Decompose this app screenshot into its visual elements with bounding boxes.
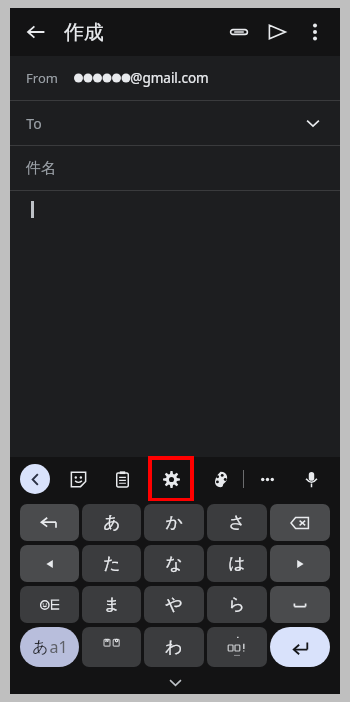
button[interactable]: More (250, 462, 284, 496)
button[interactable]: Stickers (61, 462, 95, 496)
button[interactable]: ら (207, 586, 267, 623)
button[interactable]: Punctuation (207, 627, 267, 667)
button[interactable]: Expand recipients (300, 110, 326, 136)
button[interactable]: Back (16, 12, 56, 52)
button[interactable]: な (144, 545, 204, 582)
staticText: From (26, 69, 58, 87)
button[interactable]: Cursor right (270, 545, 330, 582)
button[interactable]: Attach file (220, 13, 258, 51)
button[interactable]: Undo (20, 504, 79, 541)
staticText: は (228, 553, 246, 574)
staticText: か (165, 512, 183, 533)
button[interactable]: や (144, 586, 204, 623)
button[interactable]: あ (82, 504, 141, 541)
staticText: 作成 (64, 20, 104, 45)
button[interactable]: Cursor left (20, 545, 79, 582)
button[interactable]: あ (20, 627, 79, 667)
button[interactable]: More options (296, 13, 334, 51)
button[interactable]: さ (207, 504, 267, 541)
button[interactable]: は (207, 545, 267, 582)
button[interactable]: Emoji and symbols (20, 586, 79, 623)
button[interactable]: Voice input (294, 462, 328, 496)
button[interactable]: Send (258, 13, 296, 51)
button[interactable]: Backspace (270, 504, 330, 541)
button[interactable]: Clipboard (105, 462, 139, 496)
staticText: さ (228, 512, 246, 533)
staticText: To (26, 114, 42, 133)
staticText: あ (103, 512, 121, 533)
button[interactable] (10, 191, 340, 457)
staticText: a1 (49, 636, 68, 658)
button[interactable]: Previous (20, 464, 50, 494)
button[interactable]: Theme (203, 462, 237, 496)
button[interactable]: わ (144, 627, 204, 667)
staticText: あ (32, 637, 49, 657)
button[interactable]: ま (82, 586, 141, 623)
staticText: ま (103, 594, 121, 615)
button[interactable]: Settings (149, 457, 193, 501)
button[interactable]: 件名 (10, 146, 340, 190)
button[interactable]: From (10, 56, 340, 100)
button[interactable]: Small and diacritics (82, 627, 141, 667)
button[interactable]: Hide keyboard (160, 670, 190, 694)
staticText: 件名 (26, 159, 56, 178)
staticText: な (165, 553, 183, 574)
staticText: た (103, 553, 121, 574)
staticText: や (165, 594, 183, 615)
button[interactable]: Enter (270, 627, 330, 667)
button[interactable]: To (10, 101, 340, 145)
staticText: @gmail.com (130, 69, 209, 87)
button[interactable]: か (144, 504, 204, 541)
button[interactable]: Space (270, 586, 330, 623)
staticText: ら (228, 594, 246, 615)
staticText: わ (165, 637, 183, 658)
button[interactable]: た (82, 545, 141, 582)
